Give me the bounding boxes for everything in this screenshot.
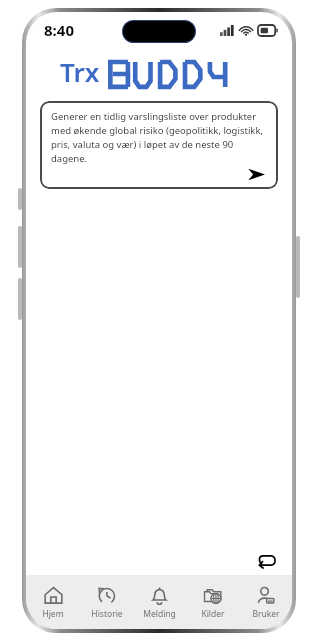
button[interactable]: Hjem — [26, 575, 80, 629]
staticText: Historie — [91, 608, 123, 620]
button[interactable]: Generer en tidlig varslingsliste over pr… — [40, 101, 278, 189]
button[interactable]: Send — [245, 166, 267, 182]
button[interactable]: Melding — [133, 575, 186, 629]
staticText: Generer en tidlig varslingsliste over pr… — [51, 110, 267, 165]
button[interactable]: Undo — [254, 548, 280, 574]
staticText: Kilder — [201, 608, 225, 620]
button[interactable]: Kilder — [186, 575, 239, 629]
staticText: 8:40 — [44, 20, 74, 40]
staticText: Trx — [60, 54, 100, 89]
button[interactable]: Bruker — [239, 575, 292, 629]
staticText: Melding — [143, 608, 176, 620]
staticText: Hjem — [42, 608, 64, 620]
button[interactable]: Historie — [80, 575, 133, 629]
staticText: Bruker — [252, 608, 280, 620]
